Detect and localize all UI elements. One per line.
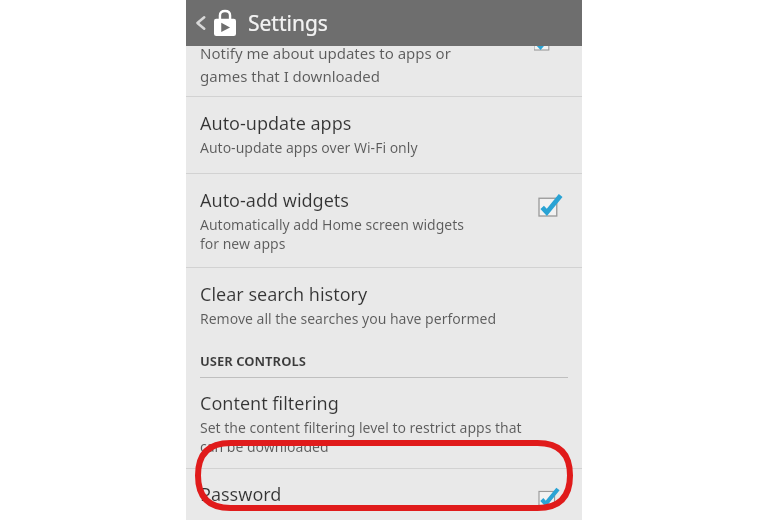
staticText: Settings <box>248 9 328 38</box>
button[interactable]: Google Play Store <box>212 8 238 38</box>
button[interactable]: Clear search history <box>186 268 582 342</box>
button[interactable]: Auto-update apps <box>186 97 582 174</box>
staticText: USER CONTROLS <box>200 352 306 370</box>
staticText: Auto-update apps over Wi-Fi only <box>200 138 418 157</box>
button[interactable]: Notify me about updates to apps or <box>186 46 582 97</box>
staticText: Password <box>200 482 282 507</box>
button[interactable]: Auto-add widgets <box>186 174 582 268</box>
staticText: Notify me about updates to apps or <box>200 46 451 63</box>
button[interactable]: Back <box>190 12 212 34</box>
staticText: Auto-add widgets <box>200 188 349 213</box>
staticText: Clear search history <box>200 282 368 307</box>
staticText: games that I downloaded <box>200 66 380 86</box>
button[interactable]: Password <box>186 469 582 520</box>
staticText: Automatically add Home screen widgets fo… <box>200 215 464 253</box>
button[interactable]: Content filtering <box>186 378 582 469</box>
staticText: Remove all the searches you have perform… <box>200 309 497 328</box>
staticText: Auto-update apps <box>200 111 352 136</box>
staticText: Content filtering <box>200 391 339 416</box>
staticText: Set the content filtering level to restr… <box>200 418 522 456</box>
